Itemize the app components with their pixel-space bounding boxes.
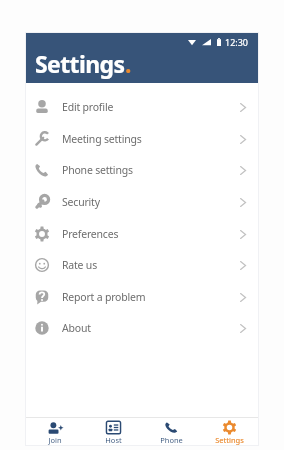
staticText: Settings	[35, 48, 125, 79]
button[interactable]: Preferences	[26, 221, 258, 247]
staticText: Report a problem	[62, 290, 146, 304]
staticText: Host	[105, 435, 122, 445]
staticText: Security	[62, 195, 100, 209]
staticText: About	[62, 321, 91, 335]
staticText: Phone	[160, 435, 183, 445]
button[interactable]: Rate us	[26, 252, 258, 278]
button[interactable]: About	[26, 315, 258, 341]
staticText: Edit profile	[62, 100, 114, 114]
staticText: .	[125, 48, 131, 79]
button[interactable]: Report a problem	[26, 284, 258, 310]
button[interactable]: Settings	[200, 418, 258, 445]
staticText: Phone settings	[62, 163, 133, 177]
staticText: Preferences	[62, 227, 119, 241]
staticText: Settings	[215, 435, 244, 445]
staticText: Join	[48, 435, 62, 445]
button[interactable]: Edit profile	[26, 94, 258, 120]
button[interactable]: Phone settings	[26, 157, 258, 183]
button[interactable]: Host	[84, 418, 142, 445]
staticText: Meeting settings	[62, 132, 142, 146]
staticText: Rate us	[62, 258, 97, 272]
button[interactable]: Phone	[142, 418, 200, 445]
staticText: 12:30	[225, 36, 249, 48]
button[interactable]: Join	[26, 418, 84, 445]
button[interactable]: Security	[26, 189, 258, 215]
button[interactable]: Meeting settings	[26, 126, 258, 152]
